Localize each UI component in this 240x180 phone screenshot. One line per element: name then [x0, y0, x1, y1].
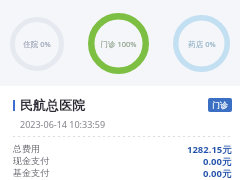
staticText: 住院 0%	[23, 39, 51, 49]
button[interactable]: 基金支付	[13, 167, 232, 178]
staticText: 民航总医院	[20, 97, 85, 113]
staticText: 现金支付	[13, 155, 49, 166]
staticText: 门诊	[212, 100, 228, 110]
button[interactable]: 门诊 100%	[88, 13, 149, 74]
button[interactable]: 药店 0%	[173, 15, 230, 72]
staticText: 1282.15元	[187, 143, 232, 154]
staticText: 基金支付	[13, 167, 49, 178]
staticText: 门诊 100%	[100, 39, 137, 49]
button[interactable]: 总费用	[13, 143, 232, 154]
button[interactable]: 住院 0%	[10, 17, 64, 71]
staticText: 2023-06-14 10:33:59	[20, 118, 106, 130]
button[interactable]: 门诊	[208, 98, 232, 112]
button[interactable]: 民航总医院	[0, 86, 240, 180]
staticText: 0.00元	[203, 155, 232, 166]
staticText: 0.00元	[203, 167, 232, 178]
button[interactable]: 现金支付	[13, 155, 232, 166]
staticText: 总费用	[13, 143, 40, 154]
staticText: 药店 0%	[188, 39, 216, 49]
